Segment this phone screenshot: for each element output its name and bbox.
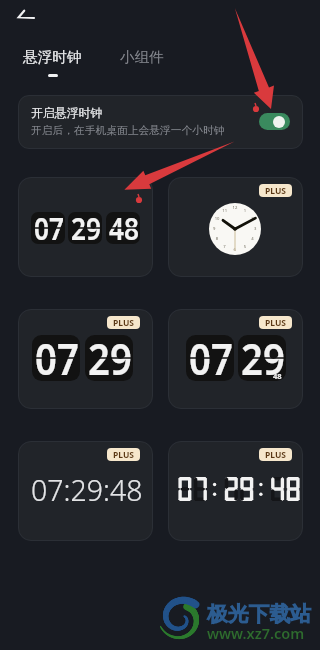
button[interactable]: Floating clock switch, on — [259, 113, 290, 130]
staticText: PLUS — [265, 449, 287, 461]
staticText: 悬浮时钟 — [23, 48, 82, 66]
staticText: 07 — [189, 335, 233, 381]
staticText: 极光下载站 — [207, 601, 311, 627]
staticText: 48 — [109, 212, 139, 244]
staticText: 29 — [71, 212, 101, 244]
button[interactable]: PLUS — [259, 184, 292, 197]
button[interactable]: PLUS — [259, 316, 292, 329]
button[interactable]: Back — [8, 2, 42, 28]
button[interactable]: PLUS — [168, 441, 303, 541]
staticText: 开启悬浮时钟 — [31, 106, 103, 121]
staticText: PLUS — [265, 185, 287, 197]
staticText: 07:29:48 — [31, 471, 143, 510]
button[interactable]: 悬浮时钟 — [17, 44, 87, 80]
staticText: 开启后，在手机桌面上会悬浮一个小时钟 — [31, 124, 225, 138]
button[interactable]: 07 — [18, 177, 153, 277]
staticText: PLUS — [265, 317, 287, 329]
button[interactable]: 小组件 — [113, 44, 169, 80]
staticText: www.xz7.com — [207, 623, 305, 643]
staticText: 29 — [241, 335, 285, 381]
button[interactable]: PLUS — [168, 177, 303, 277]
staticText: PLUS — [113, 317, 135, 329]
staticText: 小组件 — [120, 48, 164, 66]
button[interactable]: PLUS — [259, 448, 292, 461]
staticText: 07 — [35, 335, 79, 381]
button[interactable]: 07:29:48 — [18, 441, 153, 541]
button[interactable]: PLUS — [107, 316, 140, 329]
button[interactable]: PLUS — [107, 448, 140, 461]
staticText: 29 — [88, 335, 132, 381]
staticText: PLUS — [113, 449, 135, 461]
button[interactable]: 07 — [18, 309, 153, 409]
staticText: 48 — [273, 371, 282, 381]
button[interactable]: 开启悬浮时钟 — [18, 95, 303, 149]
staticText: 07 — [34, 212, 64, 244]
button[interactable]: 07 — [168, 309, 303, 409]
